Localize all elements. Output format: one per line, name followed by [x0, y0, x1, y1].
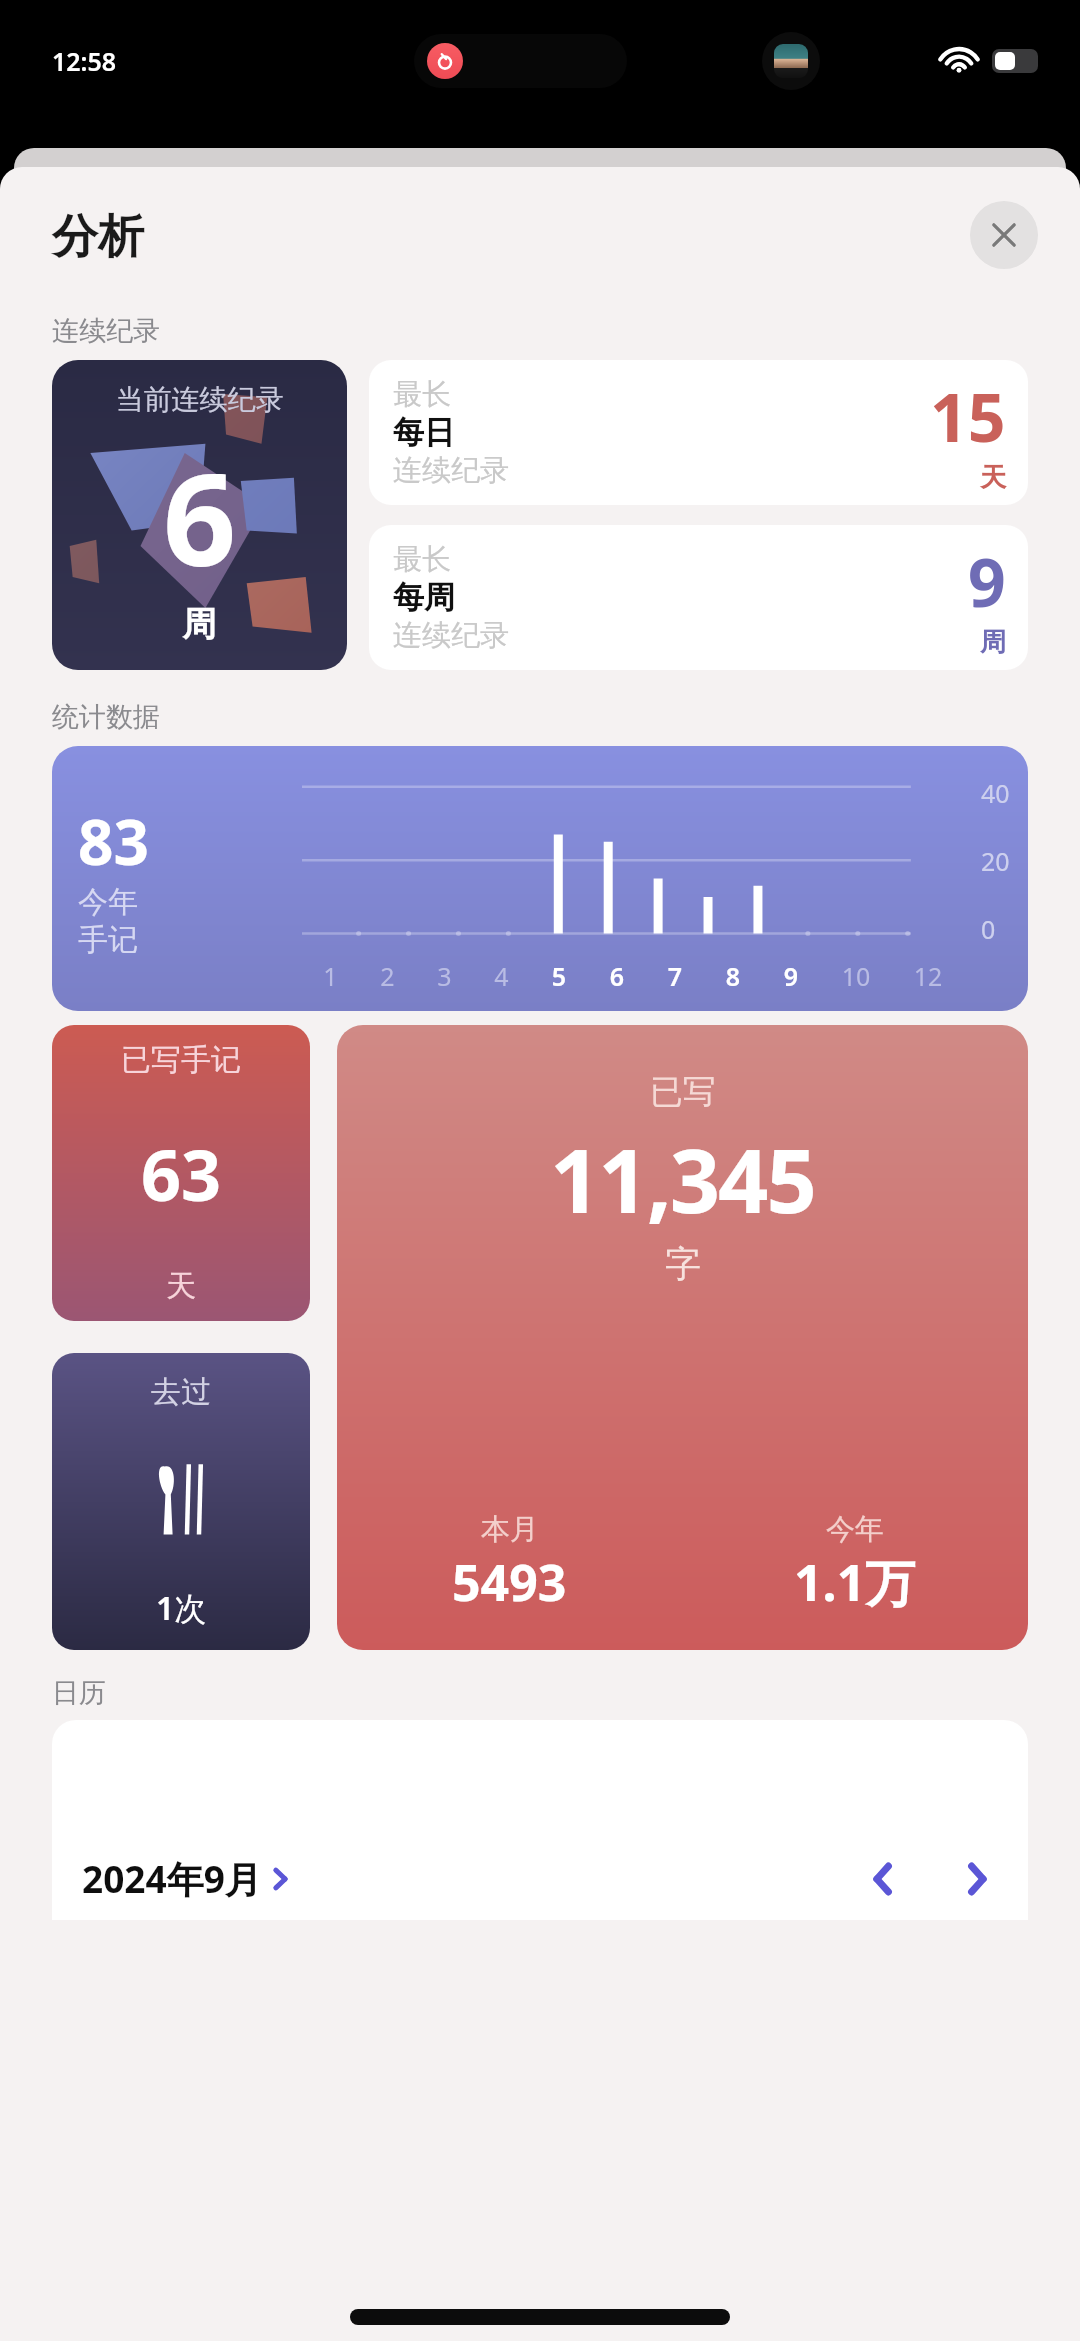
staticText: 今年 — [78, 883, 138, 921]
staticText: 去过 — [151, 1373, 211, 1411]
staticText: 天 — [166, 1267, 196, 1305]
staticText: 已写手记 — [121, 1041, 241, 1079]
staticText: 连续纪录 — [393, 617, 509, 654]
staticText: 本月 — [481, 1511, 539, 1548]
button[interactable]: 83 — [52, 746, 1028, 1011]
button[interactable]: 当前连续纪录 — [52, 360, 347, 670]
staticText: 日历 — [52, 1676, 106, 1710]
staticText: 1 — [302, 959, 359, 993]
staticText: 1次 — [156, 1586, 207, 1630]
staticText: 周 — [52, 603, 347, 646]
staticText: 63 — [141, 1126, 222, 1221]
staticText: 4 — [473, 959, 530, 993]
staticText: 每周 — [393, 578, 455, 617]
staticText: 2024年9月 — [82, 1853, 262, 1904]
staticText: 1.1万 — [794, 1548, 916, 1616]
button[interactable]: Close — [970, 201, 1038, 269]
staticText: 最长 — [393, 376, 451, 413]
button[interactable]: Next month — [952, 1854, 1002, 1904]
staticText: 统计数据 — [52, 700, 160, 734]
staticText: 当前连续纪录 — [52, 382, 347, 417]
staticText: 2 — [359, 959, 416, 993]
staticText: 分析 — [52, 208, 144, 266]
staticText: 今年 — [826, 1511, 884, 1548]
staticText: 9 — [762, 959, 820, 993]
staticText: 连续纪录 — [52, 314, 160, 348]
staticText: 每日 — [393, 413, 455, 452]
staticText: 周 — [980, 626, 1006, 659]
staticText: 6 — [52, 429, 347, 603]
button[interactable]: 最长 — [369, 525, 1028, 670]
staticText: 40 — [981, 776, 1010, 810]
staticText: 12 — [892, 959, 964, 993]
staticText: 最长 — [393, 541, 451, 578]
staticText: 字 — [665, 1241, 701, 1286]
button[interactable]: 最长 — [369, 360, 1028, 505]
staticText: 9 — [968, 536, 1006, 626]
button[interactable]: 已写 — [337, 1025, 1028, 1650]
staticText: 83 — [78, 799, 149, 883]
staticText: 10 — [820, 959, 892, 993]
button[interactable]: 2024年9月 — [52, 1720, 1028, 1920]
staticText: 5 — [530, 959, 588, 993]
staticText: 12:58 — [52, 44, 117, 78]
staticText: 8 — [704, 959, 762, 993]
staticText: 手记 — [78, 921, 138, 959]
staticText: 天 — [980, 461, 1006, 494]
staticText: 6 — [588, 959, 646, 993]
button[interactable]: Previous month — [858, 1854, 908, 1904]
staticText: 5493 — [452, 1548, 567, 1616]
staticText: 3 — [416, 959, 473, 993]
button[interactable]: 已写手记 — [52, 1025, 310, 1321]
staticText: 15 — [930, 371, 1006, 461]
staticText: 11,345 — [550, 1119, 815, 1239]
button[interactable]: 去过 — [52, 1353, 310, 1650]
staticText: 7 — [646, 959, 704, 993]
staticText: 0 — [981, 912, 996, 946]
staticText: 已写 — [650, 1071, 716, 1113]
staticText: 20 — [981, 844, 1010, 878]
staticText: 连续纪录 — [393, 452, 509, 489]
